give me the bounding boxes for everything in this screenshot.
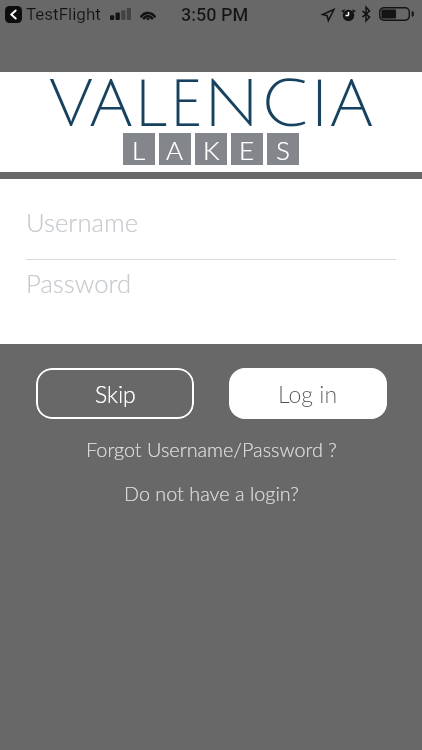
staticText: 3:50 PM bbox=[181, 4, 249, 25]
staticText: E bbox=[239, 134, 255, 165]
staticText: Log in bbox=[278, 380, 338, 408]
button[interactable]: Back bbox=[5, 6, 22, 23]
staticText: A bbox=[166, 134, 184, 165]
staticText: Password bbox=[26, 268, 132, 299]
staticText: S bbox=[276, 134, 290, 165]
button[interactable]: Log in bbox=[229, 368, 387, 419]
staticText: Do not have a login? bbox=[124, 481, 299, 505]
staticText: Skip bbox=[95, 380, 136, 408]
button[interactable]: Skip bbox=[36, 368, 194, 419]
staticText: L bbox=[132, 134, 146, 165]
staticText: Username bbox=[26, 207, 139, 238]
staticText: Forgot Username/Password ? bbox=[86, 437, 337, 461]
staticText: TestFlight bbox=[26, 4, 101, 24]
button[interactable]: Do not have a login? bbox=[0, 480, 422, 506]
button[interactable]: Forgot Username/Password ? bbox=[0, 436, 422, 462]
staticText: K bbox=[203, 134, 220, 165]
staticText: VALENCIA bbox=[0, 69, 422, 141]
